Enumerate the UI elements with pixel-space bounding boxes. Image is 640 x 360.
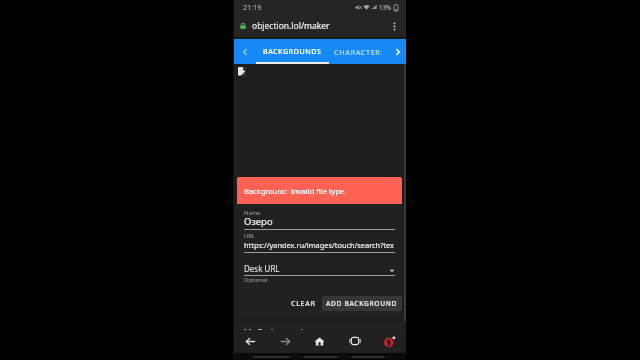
button[interactable]: Back (239, 330, 261, 352)
button[interactable]: Forward (274, 330, 296, 352)
button[interactable]: Opera menu (378, 330, 400, 352)
staticText: CLEAR (291, 299, 316, 309)
button[interactable]: BACKGROUNDS (256, 39, 329, 64)
button[interactable]: ADD BACKGROUND (322, 296, 402, 311)
staticText: BACKGROUNDS (263, 47, 322, 57)
staticText: Optional (244, 276, 268, 284)
button[interactable]: Previous tab (233, 39, 256, 64)
staticText: Background: Invalid file type. (244, 186, 347, 196)
staticText: ADD BACKGROUND (326, 299, 398, 308)
staticText: https://yandex.ru/images/touch/search?te… (244, 240, 394, 250)
staticText: 21:19 (243, 2, 262, 12)
staticText: Озеро (244, 215, 273, 228)
staticText: 13% (379, 3, 392, 11)
button[interactable]: CLEAR (282, 296, 321, 311)
button[interactable]: Home (308, 330, 330, 352)
staticText: Desk URL (244, 263, 280, 274)
button[interactable]: More options (386, 18, 402, 34)
button[interactable]: CHARACTER: (329, 39, 389, 64)
staticText: CHARACTER: (334, 47, 384, 57)
staticText: Name (244, 209, 261, 217)
button[interactable]: Tabs (344, 330, 366, 352)
staticText: My Backgrounds (244, 327, 307, 330)
button[interactable]: Next tab (389, 39, 406, 64)
staticText: URL (244, 232, 255, 240)
staticText: objection.lol/maker (252, 20, 330, 32)
